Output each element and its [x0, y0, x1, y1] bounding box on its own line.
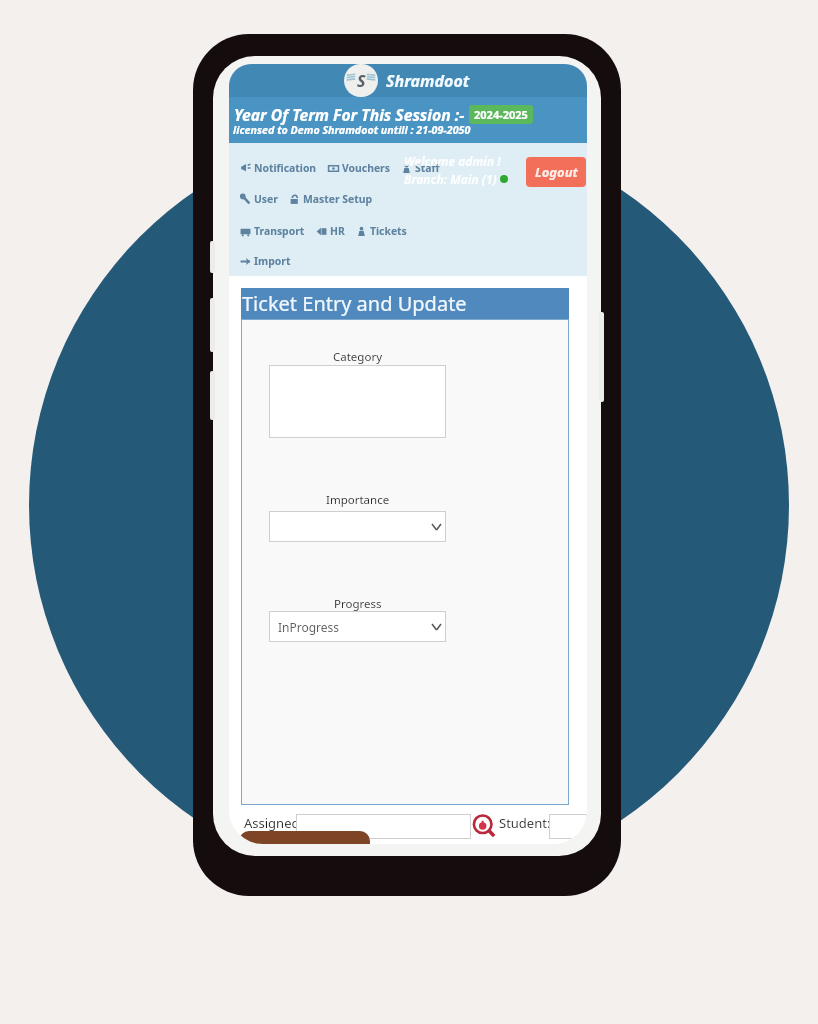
button[interactable]: User — [240, 192, 278, 206]
button[interactable]: Transport — [240, 224, 305, 238]
staticText: Category — [333, 349, 383, 365]
button[interactable] — [549, 814, 587, 839]
button[interactable] — [269, 365, 446, 438]
button[interactable]: Master Setup — [289, 192, 373, 206]
staticText: HR — [330, 224, 345, 238]
button[interactable]: InProgress — [269, 611, 446, 642]
staticText: Master Setup — [303, 192, 373, 206]
staticText: licensed to Demo Shramdoot untill : 21-0… — [233, 123, 471, 138]
staticText: Welcome admin ! — [404, 153, 501, 169]
button[interactable]: HR — [316, 224, 345, 238]
staticText: Student: — [499, 814, 551, 832]
staticText: Progress — [334, 596, 382, 612]
button[interactable]: Logout — [526, 157, 586, 187]
staticText: S — [357, 70, 366, 92]
staticText: Shramdoot — [386, 70, 470, 92]
staticText: 2024-2025 — [474, 107, 528, 122]
staticText: Vouchers — [342, 161, 390, 175]
button[interactable]: Vouchers — [328, 161, 390, 175]
staticText: InProgress — [278, 619, 340, 635]
staticText: User — [254, 192, 278, 206]
staticText: Logout — [535, 163, 578, 181]
button[interactable]: Import — [240, 254, 291, 268]
staticText: Ticket Entry and Update — [242, 290, 467, 317]
button[interactable]: Search student — [473, 815, 495, 837]
staticText: Import — [254, 254, 291, 268]
staticText: Assigned — [244, 814, 300, 832]
staticText: Notification — [254, 161, 317, 175]
staticText: Importance — [326, 492, 390, 508]
button[interactable] — [296, 814, 471, 839]
button[interactable]: Anjli S — [239, 831, 370, 844]
staticText: Staff — [415, 161, 440, 175]
button[interactable]: Tickets — [356, 224, 407, 238]
button[interactable] — [269, 511, 446, 542]
button[interactable]: Notification — [240, 161, 317, 175]
staticText: Tickets — [370, 224, 407, 238]
button[interactable]: Staff — [401, 161, 440, 175]
staticText: Year Of Term For This Session :- — [234, 104, 465, 125]
staticText: Branch: Main (1) — [404, 171, 497, 187]
staticText: Transport — [254, 224, 305, 238]
button[interactable]: S — [344, 64, 470, 97]
